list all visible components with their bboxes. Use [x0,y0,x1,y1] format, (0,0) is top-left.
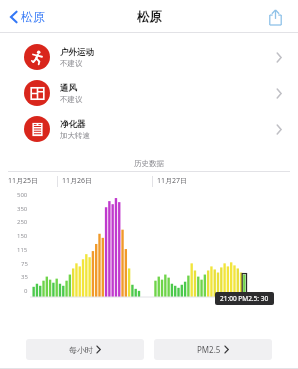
button[interactable]: 户外运动 [0,39,298,75]
staticText: 历史数据 [0,159,298,168]
staticText: 150 [17,232,28,240]
staticText: 净化器 [60,119,86,130]
staticText: 11月25日 [8,176,39,186]
staticText: 11月26日 [62,176,93,186]
staticText: 不建议 [60,59,83,68]
staticText: 户外运动 [60,47,94,58]
staticText: 每小时 [69,345,93,355]
button[interactable]: 净化器 [0,111,298,147]
staticText: 0 [24,287,28,295]
staticText: 21:00 PM2.5: 30 [220,294,269,303]
button[interactable]: 松原 [0,5,53,28]
button[interactable]: PM2.5 [154,339,272,360]
staticText: 115 [17,246,28,254]
staticText: 松原 [137,9,162,25]
staticText: 250 [17,218,28,226]
button[interactable]: Share [262,4,288,30]
staticText: 加大转速 [60,131,90,140]
staticText: 75 [21,260,28,268]
staticText: 不建议 [60,95,83,104]
button[interactable]: 通风 [0,75,298,111]
staticText: 350 [17,205,28,213]
staticText: 500 [17,191,28,199]
staticText: 11月27日 [157,176,188,186]
staticText: 松原 [21,9,45,24]
button[interactable]: 每小时 [26,339,144,360]
staticText: 通风 [60,83,77,94]
staticText: PM2.5 [197,344,221,355]
staticText: 35 [21,273,28,281]
